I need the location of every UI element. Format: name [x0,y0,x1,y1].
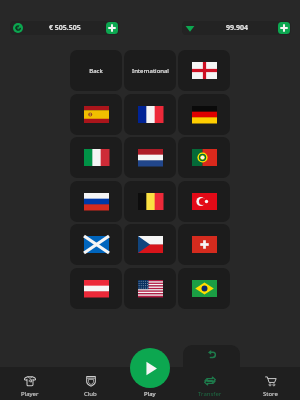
staticText: Player [21,390,39,398]
button[interactable]: 99.904 [182,21,291,35]
button[interactable] [124,181,176,222]
button[interactable] [124,137,176,178]
button[interactable]: Add [278,22,290,34]
button[interactable] [124,94,176,135]
button[interactable]: Back [70,50,122,91]
button[interactable]: Add [106,22,118,34]
button[interactable] [70,94,122,135]
button[interactable]: Club [60,367,120,400]
staticText: Transfer [198,390,222,398]
staticText: Club [84,390,97,398]
button[interactable] [178,224,230,265]
staticText: Store [263,390,278,398]
staticText: € 505.505 [49,23,81,33]
staticText: International [132,67,169,75]
button[interactable] [124,224,176,265]
button[interactable] [178,268,230,309]
button[interactable] [70,268,122,309]
button[interactable] [70,181,122,222]
button[interactable] [178,137,230,178]
button[interactable]: Transfer [180,367,240,400]
button[interactable]: International [124,50,176,91]
button[interactable]: Store [240,367,300,400]
button[interactable]: Player [0,367,60,400]
button[interactable] [124,268,176,309]
staticText: Play [144,390,156,398]
button[interactable]: € 505.505 [10,21,119,35]
staticText: 99.904 [226,23,248,33]
button[interactable] [178,50,230,91]
button[interactable] [178,181,230,222]
button[interactable] [70,137,122,178]
button[interactable]: Play [130,348,170,388]
button[interactable]: Undo [183,345,240,367]
button[interactable] [70,224,122,265]
staticText: Back [89,67,103,75]
button[interactable] [178,94,230,135]
